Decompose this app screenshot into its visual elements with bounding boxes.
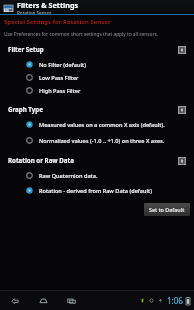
staticText: Measured values on a common X axis (defa… (39, 121, 165, 129)
staticText: Rotation - derived from Raw Data (defaul… (39, 187, 152, 195)
staticText: Rotation or Raw Data (8, 156, 74, 164)
button[interactable]: Recent apps (62, 291, 80, 309)
staticText: Special Settings for Rotation Sensor (4, 18, 111, 26)
button[interactable]: Help for Filter Setup (177, 45, 186, 54)
staticText: Normalized values (-1.0 .. +1.0) on thre… (39, 137, 165, 145)
staticText: Graph Type (8, 105, 43, 113)
button[interactable]: Home (34, 291, 52, 309)
button[interactable]: Rotation - derived from Raw Data (defaul… (4, 184, 190, 197)
staticText: Use Preferences for common short setting… (4, 31, 158, 38)
button[interactable]: Raw Quaternion data. (4, 169, 190, 182)
button[interactable]: Help for Graph Type (177, 105, 186, 114)
staticText: High Pass Filter (39, 87, 81, 95)
button[interactable]: Normalized values (-1.0 .. +1.0) on thre… (4, 134, 190, 147)
button[interactable]: Back (6, 291, 24, 309)
staticText: Filters & Settings (17, 0, 79, 10)
staticText: Set to Default (149, 206, 185, 213)
button[interactable]: Low Pass Filter (4, 71, 190, 84)
button[interactable]: App icon, navigate up (2, 2, 14, 14)
button[interactable]: Help for Rotation or Raw Data (177, 156, 186, 165)
button[interactable]: High Pass Filter (4, 84, 190, 97)
button[interactable]: No Filter (default) (4, 58, 190, 71)
staticText: Filter Setup (8, 45, 44, 53)
button[interactable]: Set to Default (144, 203, 190, 216)
staticText: 1:06 (167, 295, 183, 306)
staticText: No Filter (default) (39, 61, 86, 69)
staticText: Rotation Sensor (17, 10, 52, 15)
button[interactable]: Measured values on a common X axis (defa… (4, 118, 190, 131)
staticText: Raw Quaternion data. (39, 172, 98, 180)
staticText: Low Pass Filter (39, 74, 79, 82)
